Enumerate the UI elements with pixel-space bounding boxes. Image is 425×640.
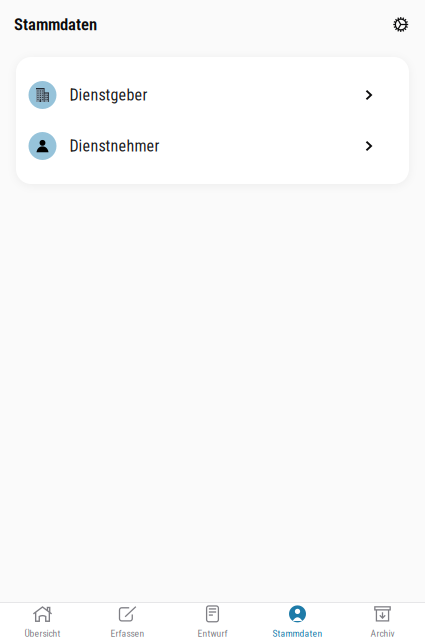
button[interactable]: Übersicht	[0, 600, 85, 640]
button[interactable]: Dienstnehmer	[16, 120, 409, 171]
staticText: Dienstgeber	[69, 86, 147, 104]
button[interactable]: Erfassen	[85, 600, 170, 640]
staticText: Entwurf	[197, 628, 227, 639]
staticText: Stammdaten	[14, 15, 97, 34]
button[interactable]: Entwurf	[170, 600, 255, 640]
button[interactable]: Stammdaten	[255, 600, 340, 640]
staticText: Übersicht	[24, 628, 60, 639]
staticText: Archiv	[370, 628, 394, 639]
staticText: Stammdaten	[272, 628, 322, 639]
staticText: Erfassen	[110, 628, 144, 639]
staticText: Dienstnehmer	[69, 137, 159, 155]
button[interactable]: Settings	[385, 9, 416, 40]
button[interactable]: Dienstgeber	[16, 69, 409, 120]
button[interactable]: Archiv	[340, 600, 425, 640]
